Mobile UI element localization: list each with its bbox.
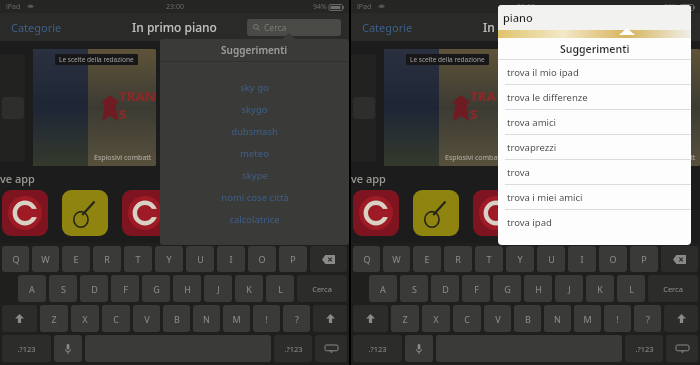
button[interactable]: App icon [413,190,459,236]
button[interactable]: J [204,275,232,302]
button[interactable]: I [568,246,596,272]
button[interactable]: bksp [661,246,698,272]
button[interactable]: App icon [182,190,228,236]
button[interactable]: Clear text [674,24,682,32]
button[interactable]: X [71,305,99,332]
button[interactable]: E [62,246,90,272]
button[interactable]: kbd [315,335,347,362]
button[interactable]: shift [664,305,698,332]
button[interactable]: shift [2,305,37,332]
button[interactable]: M [574,305,601,332]
button[interactable]: mic [54,335,82,362]
button[interactable]: R [444,246,472,272]
button[interactable]: P [630,246,658,272]
button[interactable]: trovaprezzi [498,135,691,160]
button[interactable]: S [400,275,428,302]
button[interactable]: Q [353,246,380,272]
button[interactable]: trova ipad [498,210,691,235]
button[interactable]: Cerca [648,275,698,302]
button[interactable]: .?123 [2,335,51,362]
button[interactable]: B [514,305,541,332]
button[interactable]: trova il mio ipad [498,60,691,85]
button[interactable]: D [431,275,459,302]
button[interactable]: ? [283,305,310,332]
button[interactable]: Z [391,305,419,332]
button[interactable]: shift [353,305,388,332]
button[interactable]: A [18,275,46,302]
button[interactable]: kbd [666,335,698,362]
button[interactable]: G [493,275,521,302]
button[interactable]: L [266,275,294,302]
button[interactable]: .?123 [274,335,312,362]
button[interactable]: shift [313,305,347,332]
button[interactable]: .?123 [625,335,663,362]
button[interactable]: W [383,246,410,272]
button[interactable]: O [248,246,276,272]
button[interactable]: Q [2,246,29,272]
button[interactable]: N [193,305,220,332]
button[interactable]: F [111,275,139,302]
button[interactable]: App icon [353,190,399,236]
button[interactable]: meteo [160,142,349,164]
button[interactable]: W [32,246,59,272]
button[interactable]: N [544,305,571,332]
button[interactable]: T [124,246,152,272]
button[interactable]: Cerca [297,275,347,302]
button[interactable]: H [524,275,552,302]
button[interactable]: mic [405,335,433,362]
button[interactable]: M [223,305,250,332]
button[interactable]: R [93,246,121,272]
button[interactable]: I [217,246,245,272]
button[interactable]: V [484,305,511,332]
button[interactable]: App icon [533,190,579,236]
button[interactable]: skygo [160,98,349,120]
button[interactable]: sky go [160,76,349,98]
button[interactable]: trova le differenze [498,85,691,110]
button[interactable]: E [413,246,441,272]
button[interactable]: nomi cose città [160,186,349,208]
button[interactable]: App icon [2,190,48,236]
button[interactable]: Categorie [359,17,416,38]
button[interactable]: .?123 [353,335,402,362]
button[interactable]: trova [598,19,686,36]
button[interactable]: C [102,305,130,332]
button[interactable]: X [422,305,450,332]
button[interactable]: O [599,246,627,272]
button[interactable]: A [369,275,397,302]
button[interactable]: V [133,305,160,332]
button[interactable]: ! [253,305,280,332]
button[interactable]: B [163,305,190,332]
button[interactable]: K [586,275,614,302]
button[interactable]: trova [498,160,691,185]
button[interactable]: App icon [473,190,519,236]
button[interactable]: T [475,246,503,272]
button[interactable]: J [555,275,583,302]
button[interactable]: D [80,275,108,302]
button[interactable]: K [235,275,263,302]
button[interactable]: U [186,246,214,272]
button[interactable]: L [617,275,645,302]
button[interactable]: Y [155,246,183,272]
button[interactable]: Categorie [8,17,65,38]
button[interactable]: F [462,275,490,302]
button[interactable]: trova amici [498,110,691,135]
button[interactable]: H [173,275,201,302]
button[interactable]: trova i miei amici [498,185,691,210]
button[interactable]: ? [634,305,661,332]
button[interactable]: G [142,275,170,302]
button[interactable]: dubsmash [160,120,349,142]
button[interactable]: ! [604,305,631,332]
button[interactable]: C [453,305,481,332]
button[interactable]: bksp [310,246,347,272]
button[interactable]: Y [506,246,534,272]
button[interactable]: App icon [62,190,108,236]
button[interactable]: calcolatrice [160,208,349,230]
button[interactable]: S [49,275,77,302]
button[interactable]: App icon [122,190,168,236]
button[interactable]: skype [160,164,349,186]
button[interactable]: P [279,246,307,272]
button[interactable]: U [537,246,565,272]
button[interactable]: Z [40,305,68,332]
